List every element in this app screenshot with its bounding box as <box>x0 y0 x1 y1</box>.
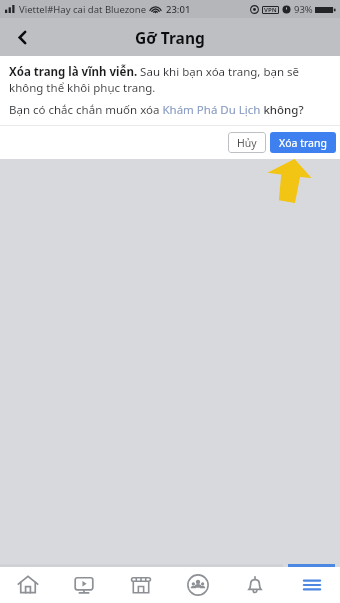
staticText: 93% <box>294 3 313 16</box>
button[interactable]: Back <box>0 18 44 56</box>
button[interactable]: Xóa trang <box>270 132 336 153</box>
button[interactable]: Home <box>0 567 56 603</box>
button[interactable]: Groups <box>169 567 226 603</box>
staticText: 23:01 <box>166 3 191 16</box>
staticText: Bạn có chắc chắn muốn xóa Khám Phá Du Lị… <box>9 102 304 118</box>
button[interactable]: Marketplace <box>112 567 169 603</box>
button[interactable]: Notifications <box>226 567 283 603</box>
staticText: Viettel#Hay cai dat Bluezone <box>19 3 147 16</box>
staticText: Xóa trang là vĩnh viễn. Sau khi bạn xóa … <box>9 64 331 95</box>
staticText: Gỡ Trang <box>135 27 205 48</box>
staticText: Xóa trang <box>279 136 327 150</box>
button[interactable]: Menu <box>283 567 340 603</box>
button[interactable]: Hủy <box>228 132 266 153</box>
button[interactable]: Video <box>56 567 112 603</box>
staticText: VPN <box>264 6 277 14</box>
staticText: Hủy <box>237 136 257 150</box>
